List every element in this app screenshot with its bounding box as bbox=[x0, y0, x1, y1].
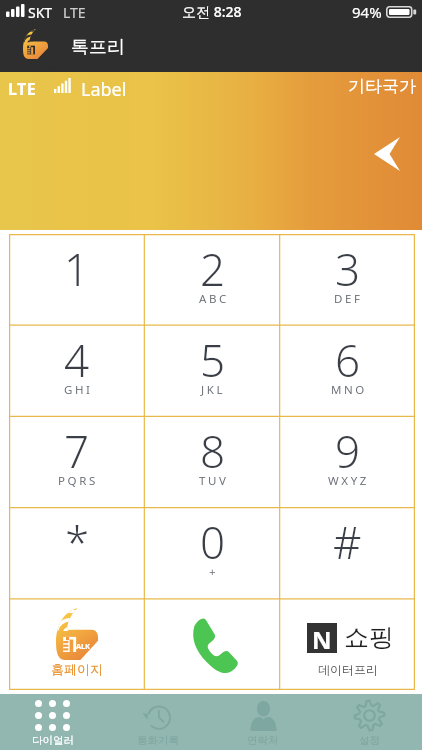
staticText: 다이얼러 bbox=[32, 734, 74, 747]
staticText: 통화기록 bbox=[137, 734, 179, 747]
button[interactable]: 다이얼러 bbox=[0, 694, 105, 750]
button[interactable]: 기타국가 bbox=[354, 72, 422, 93]
staticText: JKL bbox=[201, 382, 226, 398]
staticText: 연락처 bbox=[247, 734, 279, 747]
staticText: 0 bbox=[200, 512, 226, 572]
staticText: LTE bbox=[8, 78, 37, 100]
button[interactable]: 6 bbox=[280, 325, 415, 416]
staticText: 7 bbox=[64, 421, 90, 481]
button[interactable]: * bbox=[9, 507, 145, 598]
staticText: ALK bbox=[76, 641, 90, 651]
staticText: MNO bbox=[331, 382, 367, 398]
staticText: N bbox=[312, 623, 332, 653]
button[interactable]: Call bbox=[145, 598, 280, 689]
staticText: PQRS bbox=[58, 473, 98, 489]
staticText: 3 bbox=[335, 239, 361, 299]
button[interactable]: 1 bbox=[9, 234, 145, 325]
staticText: 4 bbox=[64, 330, 90, 390]
button[interactable]: 3 bbox=[280, 234, 415, 325]
staticText: DEF bbox=[334, 291, 363, 307]
staticText: * bbox=[65, 512, 90, 572]
staticText: 톡프리 bbox=[71, 36, 125, 59]
button[interactable]: 7 bbox=[9, 416, 145, 507]
button[interactable]: 4 bbox=[9, 325, 145, 416]
button[interactable]: 8 bbox=[145, 416, 280, 507]
staticText: 6 bbox=[335, 330, 361, 390]
staticText: 홈페이지 bbox=[51, 661, 103, 677]
button[interactable]: 연락처 bbox=[210, 694, 316, 750]
staticText: WXYZ bbox=[328, 473, 369, 489]
staticText: 쇼핑 bbox=[344, 622, 394, 653]
staticText: 2 bbox=[200, 239, 226, 299]
staticText: GHI bbox=[64, 382, 93, 398]
staticText: LTE bbox=[63, 3, 86, 22]
staticText: 5 bbox=[200, 330, 226, 390]
staticText: 94% bbox=[352, 2, 382, 22]
button[interactable]: ALK bbox=[9, 598, 145, 689]
button[interactable]: 9 bbox=[280, 416, 415, 507]
staticText: 9 bbox=[335, 421, 361, 481]
staticText: 데이터프리 bbox=[318, 662, 378, 677]
staticText: 8 bbox=[200, 421, 226, 481]
staticText: TUV bbox=[199, 473, 229, 489]
staticText: 오전 8:28 bbox=[182, 2, 242, 21]
staticText: SKT bbox=[28, 3, 53, 22]
staticText: 1 bbox=[64, 239, 90, 299]
staticText: + bbox=[209, 564, 219, 580]
button[interactable]: 통화기록 bbox=[105, 694, 210, 750]
staticText: # bbox=[333, 512, 362, 572]
button[interactable]: Previous bbox=[374, 137, 400, 171]
staticText: Label bbox=[81, 77, 127, 102]
button[interactable]: 0 bbox=[145, 507, 280, 598]
button[interactable]: 2 bbox=[145, 234, 280, 325]
staticText: ABC bbox=[199, 291, 229, 307]
button[interactable]: 설정 bbox=[316, 694, 422, 750]
button[interactable]: # bbox=[280, 507, 415, 598]
button[interactable]: N bbox=[280, 598, 415, 689]
button[interactable]: 5 bbox=[145, 325, 280, 416]
staticText: 설정 bbox=[359, 734, 380, 747]
